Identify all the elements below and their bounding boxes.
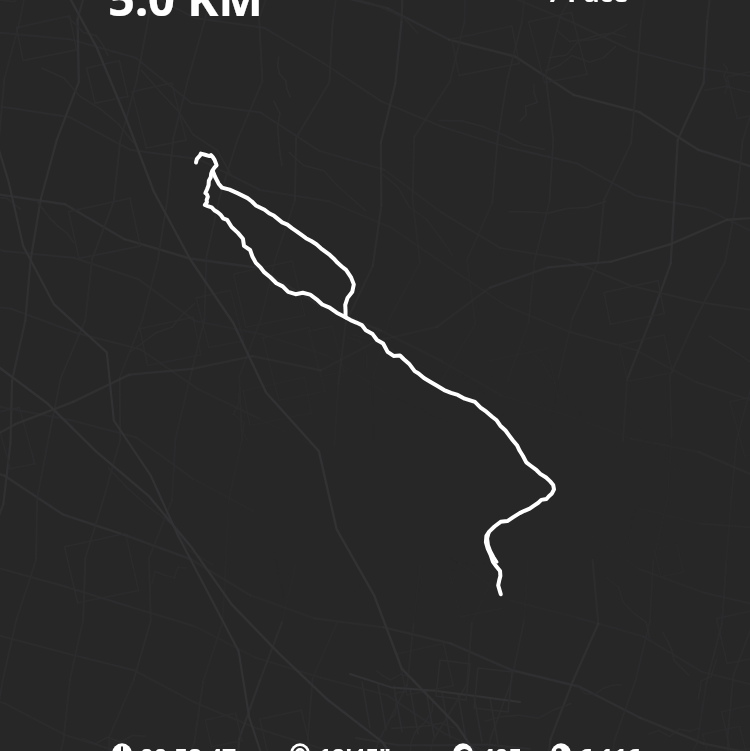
other: Duration xyxy=(112,743,132,751)
other: Calories xyxy=(453,743,473,751)
button[interactable]: Activity route map xyxy=(0,0,750,751)
staticText: 6,116 xyxy=(579,740,641,751)
button[interactable]: / Pace xyxy=(550,0,629,9)
staticText: / Pace xyxy=(550,0,629,9)
button[interactable]: Duration xyxy=(112,740,236,751)
staticText: 00:58:47 xyxy=(140,740,236,751)
other: Steps xyxy=(551,743,571,751)
staticText: 405 xyxy=(481,740,523,751)
button[interactable]: 5.0 KM xyxy=(108,0,263,30)
button[interactable]: Calories xyxy=(453,740,523,751)
staticText: 19'45" xyxy=(318,740,391,751)
button[interactable]: Average pace xyxy=(290,740,391,751)
staticText: 5.0 KM xyxy=(108,0,263,30)
other: Average pace xyxy=(290,743,310,751)
button[interactable]: Steps xyxy=(551,740,641,751)
